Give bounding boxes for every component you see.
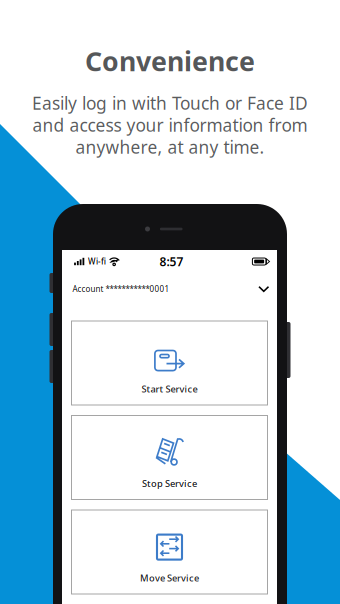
button[interactable]: Move Service — [71, 510, 267, 594]
staticText: 8:57 — [159, 253, 183, 269]
staticText: Wi-fi — [88, 256, 106, 267]
staticText: Account ***********0001 — [72, 284, 169, 294]
staticText: Move Service — [140, 572, 199, 584]
staticText: Convenience — [85, 43, 255, 79]
button[interactable]: Stop Service — [71, 415, 267, 499]
staticText: anywhere, at any time. — [75, 135, 264, 158]
staticText: Easily log in with Touch or Face ID — [32, 91, 308, 114]
staticText: Stop Service — [142, 477, 197, 489]
staticText: Start Service — [141, 383, 197, 395]
staticText: and access your information from — [32, 113, 307, 136]
button[interactable]: Start Service — [71, 321, 267, 405]
